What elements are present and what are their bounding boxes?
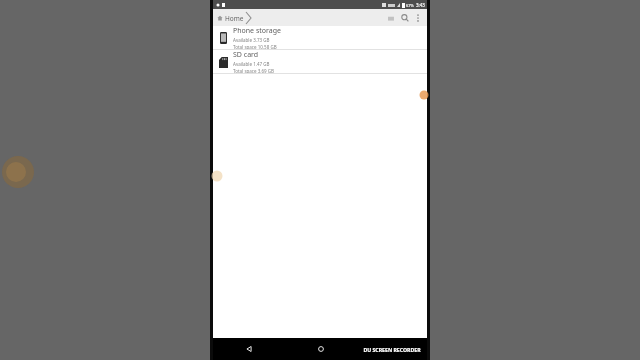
button[interactable]: Back: [213, 338, 285, 360]
staticText: Home: [225, 14, 244, 23]
staticText: Phone storage: [233, 26, 281, 36]
button[interactable]: Phone storage: [213, 26, 427, 49]
staticText: DU SCREEN RECORDER: [363, 346, 421, 353]
button[interactable]: Home: [215, 10, 253, 26]
button[interactable]: Search: [398, 11, 412, 25]
button[interactable]: SD card: [213, 50, 427, 73]
staticText: 3:43: [416, 2, 425, 8]
staticText: Available 1.47 GB: [233, 61, 270, 67]
button[interactable]: Select: [384, 11, 398, 25]
staticText: Available 3.73 GB: [233, 37, 270, 43]
staticText: SD card: [233, 50, 259, 60]
button[interactable]: Home: [285, 338, 356, 360]
staticText: Total space 10.58 GB: [233, 44, 277, 49]
button[interactable]: More options: [412, 12, 424, 24]
staticText: Total space 3.69 GB: [233, 68, 275, 73]
staticText: 67%: [406, 3, 414, 8]
